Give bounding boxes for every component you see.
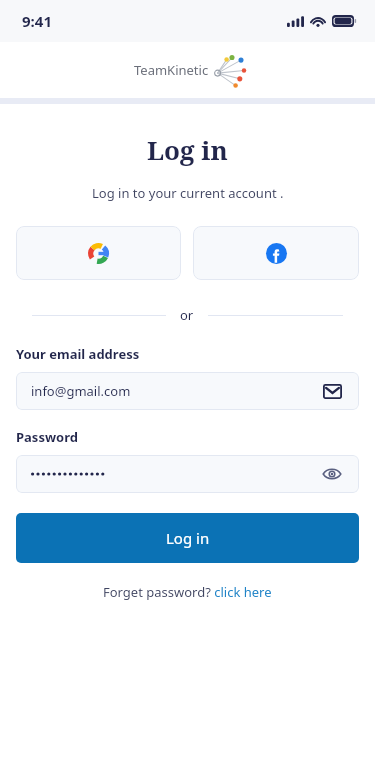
staticText: Your email address — [16, 345, 140, 363]
staticText: Log in — [147, 132, 228, 167]
button[interactable]: Sign in with Facebook — [193, 226, 359, 280]
staticText: info@gmail.com — [31, 382, 320, 400]
staticText: TeamKinetic — [134, 61, 209, 79]
button[interactable]: Log in — [16, 513, 359, 563]
button[interactable]: Sign in with Google — [16, 226, 181, 280]
button[interactable]: Forget password? click here — [103, 583, 272, 601]
button[interactable]: Password — [16, 455, 359, 493]
button[interactable]: Password — [320, 462, 344, 486]
staticText: Log in to your current account . — [92, 184, 284, 202]
button[interactable]: info@gmail.com — [16, 372, 359, 410]
staticText: or — [180, 306, 194, 324]
staticText: Forget password? click here — [103, 583, 272, 601]
button[interactable]: Email address — [320, 379, 344, 403]
staticText: Password — [16, 428, 78, 446]
staticText: 9:41 — [22, 11, 52, 31]
staticText: Log in — [166, 528, 210, 548]
